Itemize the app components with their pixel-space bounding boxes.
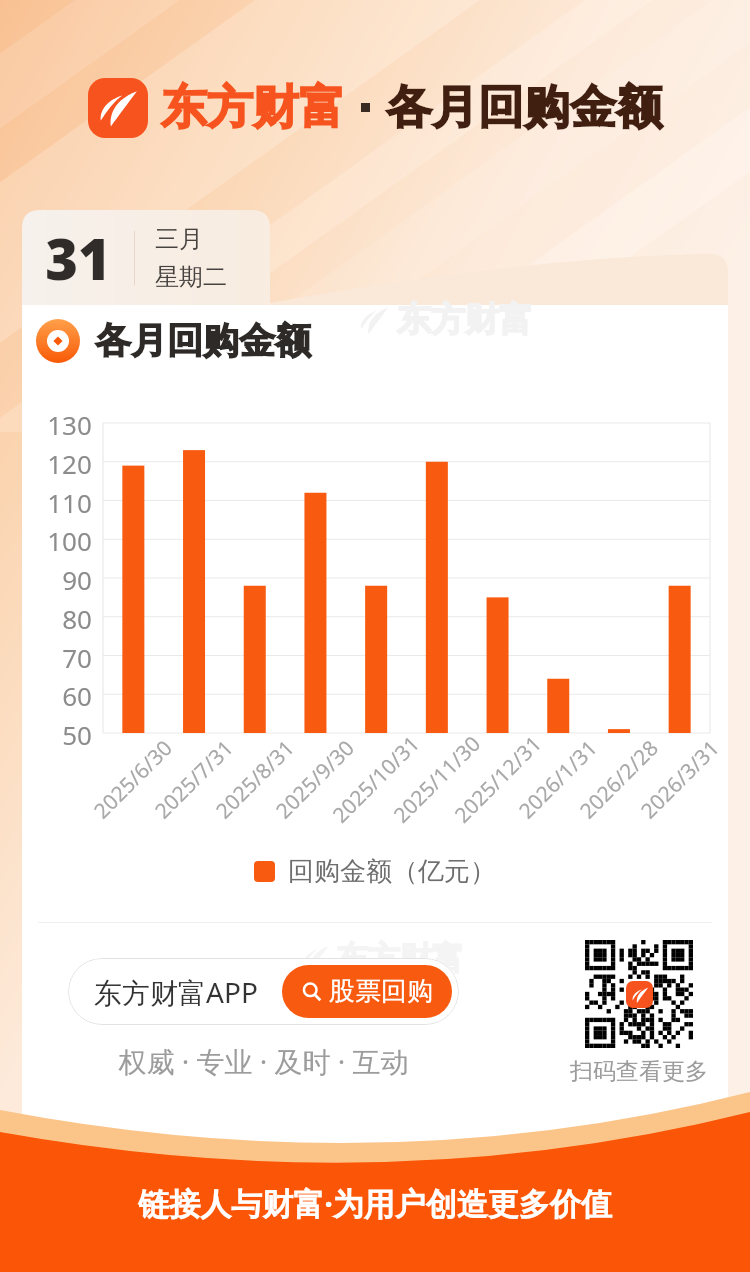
staticText: 50 <box>62 717 92 749</box>
button[interactable]: 搜索 <box>282 965 452 1018</box>
staticText: 权威 · 专业 · 及时 · 互动 <box>118 1042 409 1080</box>
staticText: 2025/6/30 <box>87 734 179 825</box>
staticText: 80 <box>62 601 92 633</box>
staticText: 东方财富APP <box>94 973 258 1011</box>
staticText: 股票回购 <box>329 975 433 1008</box>
staticText: 2025/7/31 <box>148 734 240 825</box>
staticText: 2025/8/31 <box>209 734 301 825</box>
button[interactable]: 东方财富APP <box>68 958 459 1025</box>
staticText: 各月回购金额 <box>95 318 311 363</box>
staticText: 各月回购金额 <box>386 79 662 137</box>
staticText: 2025/9/30 <box>269 734 361 825</box>
staticText: 2025/12/31 <box>448 730 548 829</box>
staticText: 三月 <box>155 224 203 254</box>
staticText: 扫码查看更多 <box>570 1057 708 1086</box>
staticText: 2025/10/31 <box>326 730 426 829</box>
staticText: 90 <box>62 562 92 594</box>
staticText: 70 <box>62 640 92 672</box>
staticText: 60 <box>62 678 92 710</box>
staticText: 回购金额（亿元） <box>288 855 496 888</box>
staticText: 东方财富 <box>161 79 345 137</box>
staticText: 2025/11/30 <box>387 730 487 829</box>
staticText: 星期二 <box>155 262 227 292</box>
staticText: 2026/3/31 <box>634 734 726 825</box>
staticText: 31 <box>45 220 111 296</box>
staticText: 130 <box>47 407 92 439</box>
other: 搜索 <box>301 981 322 1002</box>
staticText: 100 <box>47 523 92 555</box>
staticText: 链接人与财富·为用户创造更多价值 <box>138 1182 612 1224</box>
staticText: 2026/2/28 <box>573 734 665 825</box>
staticText: 120 <box>47 446 92 478</box>
staticText: 东方财富 <box>397 298 533 341</box>
staticText: 2026/1/31 <box>512 734 604 825</box>
staticText: 东方财富 <box>336 938 464 978</box>
staticText: 110 <box>47 485 92 517</box>
